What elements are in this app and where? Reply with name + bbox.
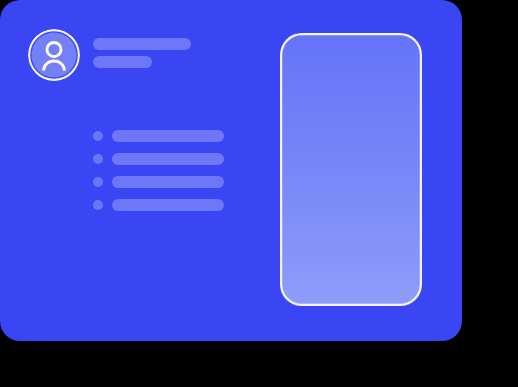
button[interactable]: Profile	[28, 29, 80, 81]
button[interactable]: Profile	[0, 0, 462, 341]
button[interactable]: Preview	[280, 33, 422, 306]
